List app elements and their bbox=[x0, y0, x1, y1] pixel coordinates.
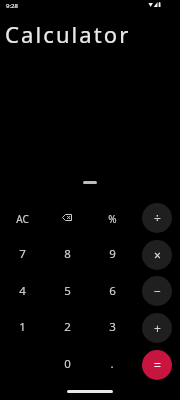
staticText: 4 bbox=[19, 283, 26, 299]
staticText: 5 bbox=[64, 283, 71, 299]
staticText: 9 bbox=[109, 246, 116, 262]
staticText: . bbox=[110, 356, 114, 372]
staticText: 3 bbox=[109, 319, 116, 335]
button[interactable]: 6 bbox=[91, 274, 133, 308]
button[interactable]: Backspace bbox=[46, 200, 88, 234]
staticText: ÷ bbox=[154, 210, 161, 226]
staticText: Calculator bbox=[5, 19, 131, 49]
button[interactable]: 4 bbox=[1, 274, 43, 308]
staticText: 2 bbox=[64, 319, 71, 335]
staticText: AC bbox=[16, 212, 29, 226]
button[interactable]: 2 bbox=[46, 310, 88, 344]
staticText: 7 bbox=[19, 246, 26, 262]
staticText: − bbox=[154, 283, 161, 299]
staticText: + bbox=[154, 320, 161, 336]
staticText: 8 bbox=[64, 246, 71, 262]
button[interactable]: 9 bbox=[91, 237, 133, 271]
button[interactable]: 3 bbox=[91, 310, 133, 344]
staticText: × bbox=[154, 247, 161, 263]
button[interactable]: . bbox=[91, 347, 133, 381]
staticText: 9:28 bbox=[6, 2, 18, 10]
button[interactable]: Divide bbox=[142, 203, 172, 233]
button[interactable]: Multiply bbox=[142, 240, 172, 270]
staticText: 1 bbox=[19, 319, 26, 335]
button[interactable]: 8 bbox=[46, 237, 88, 271]
staticText: % bbox=[108, 212, 117, 226]
button[interactable]: Subtract bbox=[142, 276, 172, 306]
staticText: 6 bbox=[109, 283, 116, 299]
button[interactable]: 5 bbox=[46, 274, 88, 308]
button[interactable]: 7 bbox=[1, 237, 43, 271]
button[interactable]: % bbox=[91, 202, 133, 236]
button[interactable]: Equals bbox=[142, 350, 172, 380]
staticText: 0 bbox=[64, 356, 71, 372]
button[interactable]: AC bbox=[1, 202, 43, 236]
button[interactable]: 0 bbox=[46, 347, 88, 381]
button[interactable]: 1 bbox=[1, 310, 43, 344]
button[interactable]: Add bbox=[142, 313, 172, 343]
staticText: = bbox=[154, 357, 161, 373]
